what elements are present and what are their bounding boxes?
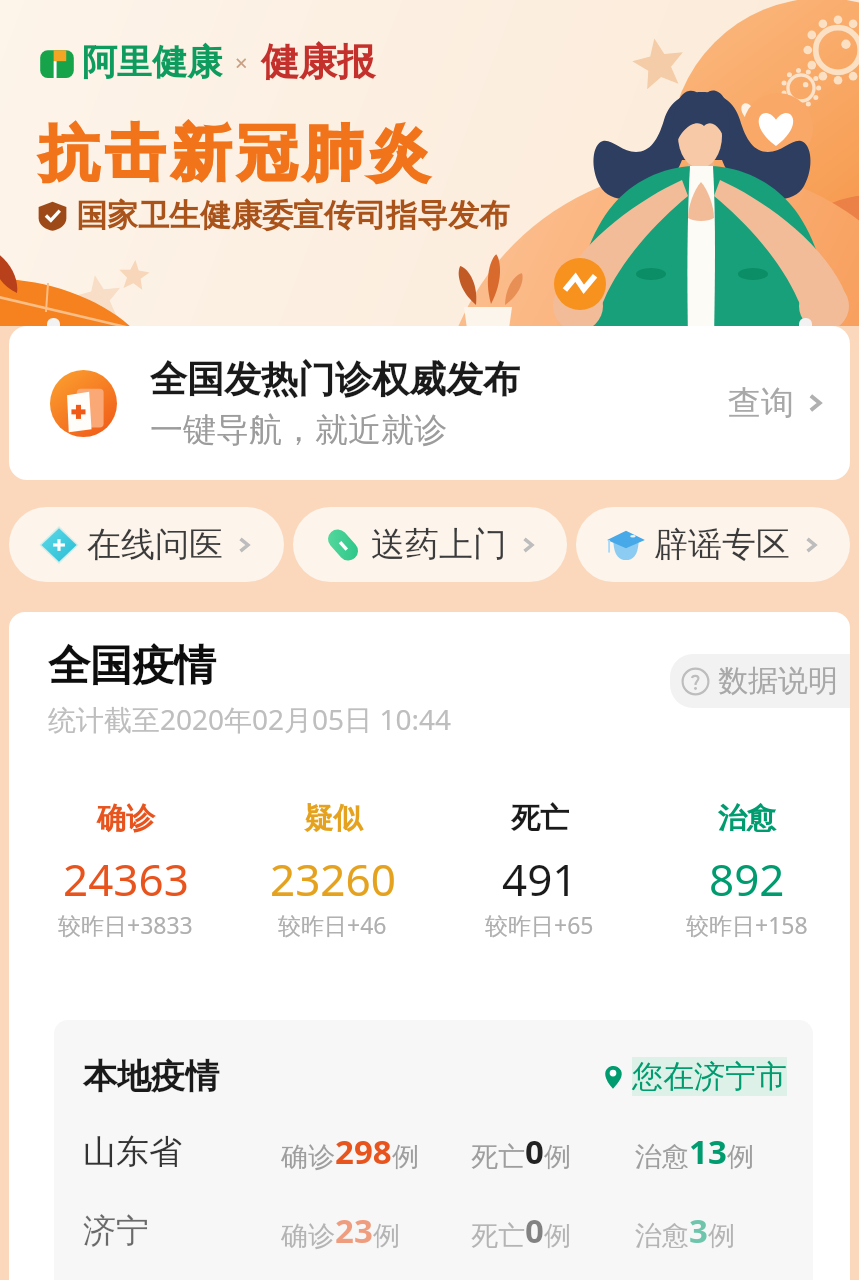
button[interactable]: 送药上门 bbox=[293, 507, 567, 582]
staticText: 491 bbox=[502, 849, 578, 909]
staticText: 例 bbox=[392, 1140, 419, 1174]
button[interactable]: 数据说明 bbox=[670, 654, 850, 708]
staticText: 23 bbox=[335, 1208, 373, 1253]
staticText: 统计截至2020年02月05日 10:44 bbox=[48, 700, 451, 738]
staticText: 阿里健康 bbox=[82, 40, 222, 84]
staticText: 数据说明 bbox=[718, 662, 838, 700]
staticText: 例 bbox=[373, 1219, 400, 1253]
staticText: 抗击新冠肺炎 bbox=[36, 116, 432, 192]
staticText: 死亡 bbox=[471, 1140, 525, 1174]
staticText: 确诊 bbox=[97, 800, 155, 837]
staticText: 您在济宁市 bbox=[632, 1057, 787, 1096]
staticText: 山东省 bbox=[83, 1131, 182, 1173]
staticText: 国家卫生健康委宣传司指导发布 bbox=[76, 196, 510, 235]
staticText: 例 bbox=[544, 1219, 571, 1253]
staticText: 例 bbox=[708, 1219, 735, 1253]
staticText: × bbox=[235, 47, 248, 77]
staticText: 0 bbox=[525, 1129, 544, 1174]
staticText: 例 bbox=[727, 1140, 754, 1174]
button[interactable]: 您在济宁市 bbox=[599, 1057, 787, 1096]
staticText: 辟谣专区 bbox=[654, 523, 790, 566]
staticText: 治愈 bbox=[635, 1219, 689, 1253]
staticText: 892 bbox=[709, 849, 785, 909]
staticText: 3 bbox=[689, 1208, 708, 1253]
staticText: 治愈 bbox=[718, 800, 776, 837]
staticText: 例 bbox=[544, 1140, 571, 1174]
staticText: 较昨日+46 bbox=[278, 909, 387, 940]
staticText: 健康报 bbox=[261, 38, 375, 86]
staticText: 较昨日+3833 bbox=[58, 909, 193, 940]
staticText: 济宁 bbox=[83, 1210, 149, 1252]
staticText: 0 bbox=[525, 1208, 544, 1253]
staticText: 治愈 bbox=[635, 1140, 689, 1174]
button[interactable]: 在线问医 bbox=[9, 507, 284, 582]
staticText: 查询 bbox=[728, 382, 794, 424]
staticText: 全国发热门诊权威发布 bbox=[150, 356, 520, 403]
staticText: 死亡 bbox=[511, 800, 569, 837]
staticText: 在线问医 bbox=[87, 523, 223, 566]
staticText: 死亡 bbox=[471, 1219, 525, 1253]
staticText: 本地疫情 bbox=[83, 1055, 219, 1098]
staticText: 疑似 bbox=[304, 800, 362, 837]
staticText: 23260 bbox=[270, 849, 396, 909]
staticText: 全国疫情 bbox=[48, 640, 216, 693]
staticText: 13 bbox=[689, 1129, 727, 1174]
button[interactable]: 辟谣专区 bbox=[576, 507, 850, 582]
staticText: 确诊 bbox=[281, 1219, 335, 1253]
staticText: 确诊 bbox=[281, 1140, 335, 1174]
button[interactable]: 全国发热门诊权威发布 bbox=[9, 326, 850, 480]
staticText: 一键导航，就近就诊 bbox=[150, 409, 447, 451]
staticText: 较昨日+65 bbox=[485, 909, 594, 940]
staticText: 送药上门 bbox=[371, 523, 507, 566]
staticText: 较昨日+158 bbox=[686, 909, 808, 940]
staticText: 24363 bbox=[63, 849, 189, 909]
staticText: 298 bbox=[335, 1129, 392, 1174]
